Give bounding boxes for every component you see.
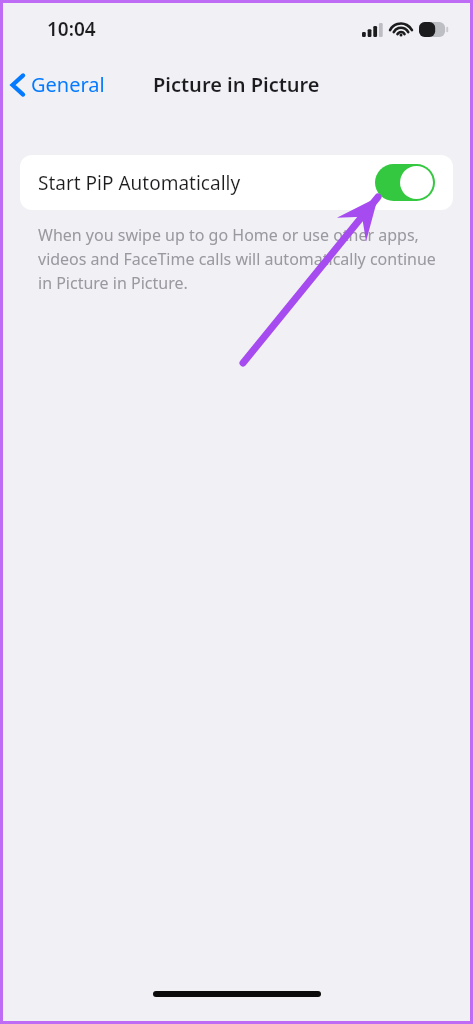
button[interactable]: General — [3, 65, 115, 104]
staticText: When you swipe up to go Home or use othe… — [38, 224, 440, 294]
staticText: Picture in Picture — [153, 71, 320, 98]
staticText: 10:04 — [47, 16, 96, 42]
button[interactable]: Start PiP Automatically — [20, 155, 453, 210]
staticText: Start PiP Automatically — [38, 170, 375, 196]
staticText: General — [31, 71, 105, 98]
button[interactable]: Start PiP Automatically toggle, on — [375, 164, 435, 201]
